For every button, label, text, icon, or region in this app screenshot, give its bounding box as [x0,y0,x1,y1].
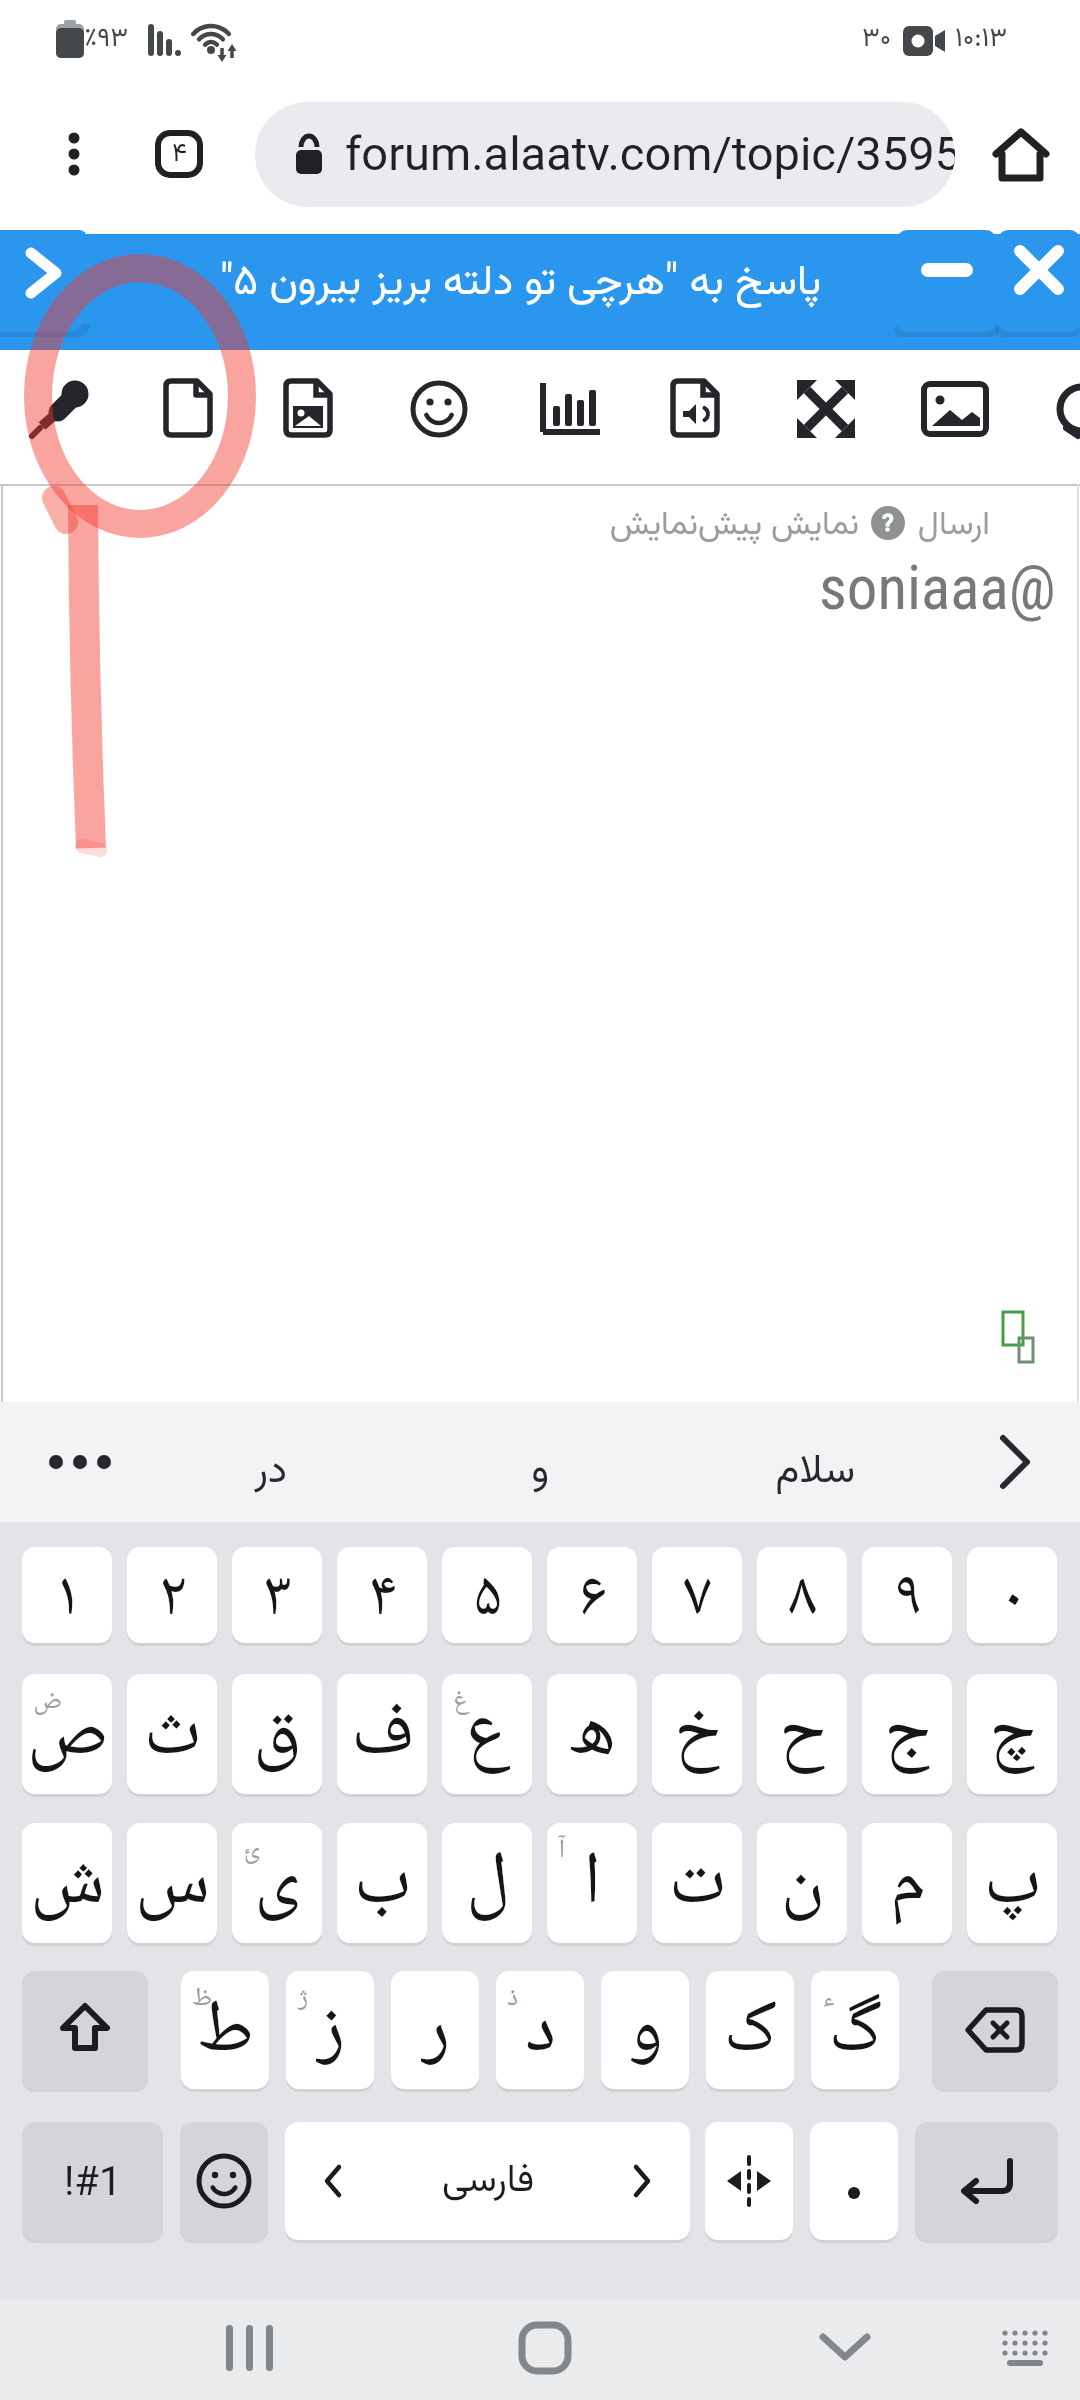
staticText: س [135,1823,210,1943]
button[interactable]: د [496,1971,584,2089]
button[interactable]: س [127,1823,217,1943]
staticText: م [889,1823,926,1943]
button[interactable]: ق [232,1674,322,1794]
button[interactable]: ۲ [127,1547,217,1643]
button[interactable]: ۱ [22,1547,112,1643]
button[interactable]: ۰ [967,1547,1057,1643]
staticText: ۶ [578,1547,607,1643]
staticText: گ [828,1971,882,2089]
button[interactable] [20,1402,140,1522]
button[interactable]: خ [652,1674,742,1794]
staticText: ز [316,1971,345,2089]
button[interactable] [897,230,996,332]
button[interactable] [790,2295,900,2400]
staticText: ذ [507,1977,518,2021]
staticText: ٪۹۳ [84,18,129,60]
staticText: ۴ [368,1547,397,1643]
button[interactable] [30,378,92,440]
button[interactable]: ۳ [232,1547,322,1643]
button[interactable] [408,378,470,440]
button[interactable] [195,2295,305,2400]
staticText: غ [453,1680,469,1724]
button[interactable]: ل [442,1823,532,1943]
staticText: ع [465,1674,510,1794]
button[interactable] [990,124,1052,186]
staticText: آ [558,1829,565,1873]
button[interactable]: ۵ [442,1547,532,1643]
button[interactable] [283,378,338,440]
button[interactable] [180,2122,268,2240]
button[interactable] [490,2295,600,2400]
button[interactable]: فارسی [285,2122,690,2240]
button[interactable]: ۹ [862,1547,952,1643]
button[interactable]: ک [706,1971,794,2089]
button[interactable] [1056,378,1080,440]
button[interactable]: م [862,1823,952,1943]
staticText: !#1 [64,2158,122,2205]
button[interactable]: !#1 [22,2122,163,2240]
button[interactable] [932,1971,1058,2089]
button[interactable]: ش [22,1823,112,1943]
button[interactable]: ه [547,1674,637,1794]
button[interactable]: ع [442,1674,532,1794]
button[interactable] [670,378,725,440]
button[interactable] [44,124,104,184]
button[interactable]: ص [22,1674,112,1794]
button[interactable]: ب [337,1823,427,1943]
button[interactable]: و [601,1971,689,2089]
button[interactable]: ز [286,1971,374,2089]
button[interactable] [0,230,87,332]
staticText: نمایش پیش‌نمایش [609,500,859,546]
button[interactable] [960,1402,1070,1522]
staticText: و [628,1971,663,2089]
button[interactable]: در [180,1412,360,1532]
staticText: ا [583,1823,601,1943]
button[interactable] [915,2122,1058,2240]
button[interactable]: ف [337,1674,427,1794]
staticText: ۵ [473,1547,502,1643]
staticText: ئ [243,1829,260,1873]
staticText: ط [197,1971,254,2089]
button[interactable] [540,380,602,438]
button[interactable]: ن [757,1823,847,1943]
staticText: د [525,1971,556,2089]
staticText: ۷ [683,1547,712,1643]
button[interactable]: forum.alaatv.com/topic/3595 [255,102,955,207]
button[interactable]: ا [547,1823,637,1943]
staticText: ۳۰ [862,18,892,60]
button[interactable]: ط [181,1971,269,2089]
button[interactable]: سلام [725,1412,905,1532]
staticText: چ [988,1674,1036,1794]
staticText: ج [883,1674,931,1794]
button[interactable]: ۸ [757,1547,847,1643]
button[interactable]: ر [391,1971,479,2089]
button[interactable]: ۴ [337,1547,427,1643]
button[interactable] [163,378,218,440]
button[interactable] [705,2122,793,2240]
button[interactable]: ج [862,1674,952,1794]
button[interactable] [22,1971,148,2089]
staticText: خ [673,1674,721,1794]
button[interactable] [810,2122,898,2240]
button[interactable]: چ [967,1674,1057,1794]
button[interactable]: ت [652,1823,742,1943]
button[interactable]: ی [232,1823,322,1943]
button[interactable]: ۷ [652,1547,742,1643]
staticText: ص [26,1674,108,1794]
button[interactable]: ۶ [547,1547,637,1643]
button[interactable] [998,230,1080,332]
button[interactable] [795,378,857,440]
button[interactable]: گ [811,1971,899,2089]
button[interactable]: پ [967,1823,1057,1943]
button[interactable] [975,2295,1075,2400]
button[interactable] [922,382,988,436]
button[interactable]: و [450,1412,630,1532]
staticText: فارسی [442,2152,534,2211]
staticText: ث [143,1674,201,1794]
button[interactable]: ح [757,1674,847,1794]
staticText: ت [668,1823,726,1943]
button[interactable]: ۴ [155,130,203,178]
staticText: ارسال [917,500,990,546]
staticText: ه [569,1674,616,1794]
button[interactable]: ث [127,1674,217,1794]
